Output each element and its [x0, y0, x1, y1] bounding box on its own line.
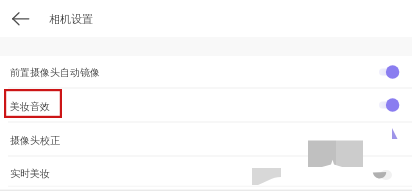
staticText: 实时美妆	[10, 167, 50, 180]
button[interactable]: 摄像头校正	[0, 122, 412, 156]
staticText: 摄像头校正	[10, 134, 60, 147]
button[interactable]: 前置摄像头自动镜像	[0, 56, 412, 88]
staticText: 相机设置	[49, 12, 93, 26]
staticText: 美妆音效	[10, 100, 50, 113]
button[interactable]: Toggle 美妆音效	[379, 98, 399, 112]
button[interactable]: 实时美妆	[0, 156, 412, 190]
button[interactable]: Back	[9, 7, 33, 31]
button[interactable]: Toggle 前置摄像头自动镜像	[379, 65, 399, 79]
staticText: 前置摄像头自动镜像	[10, 66, 100, 79]
button[interactable]: 美妆音效	[0, 88, 412, 122]
